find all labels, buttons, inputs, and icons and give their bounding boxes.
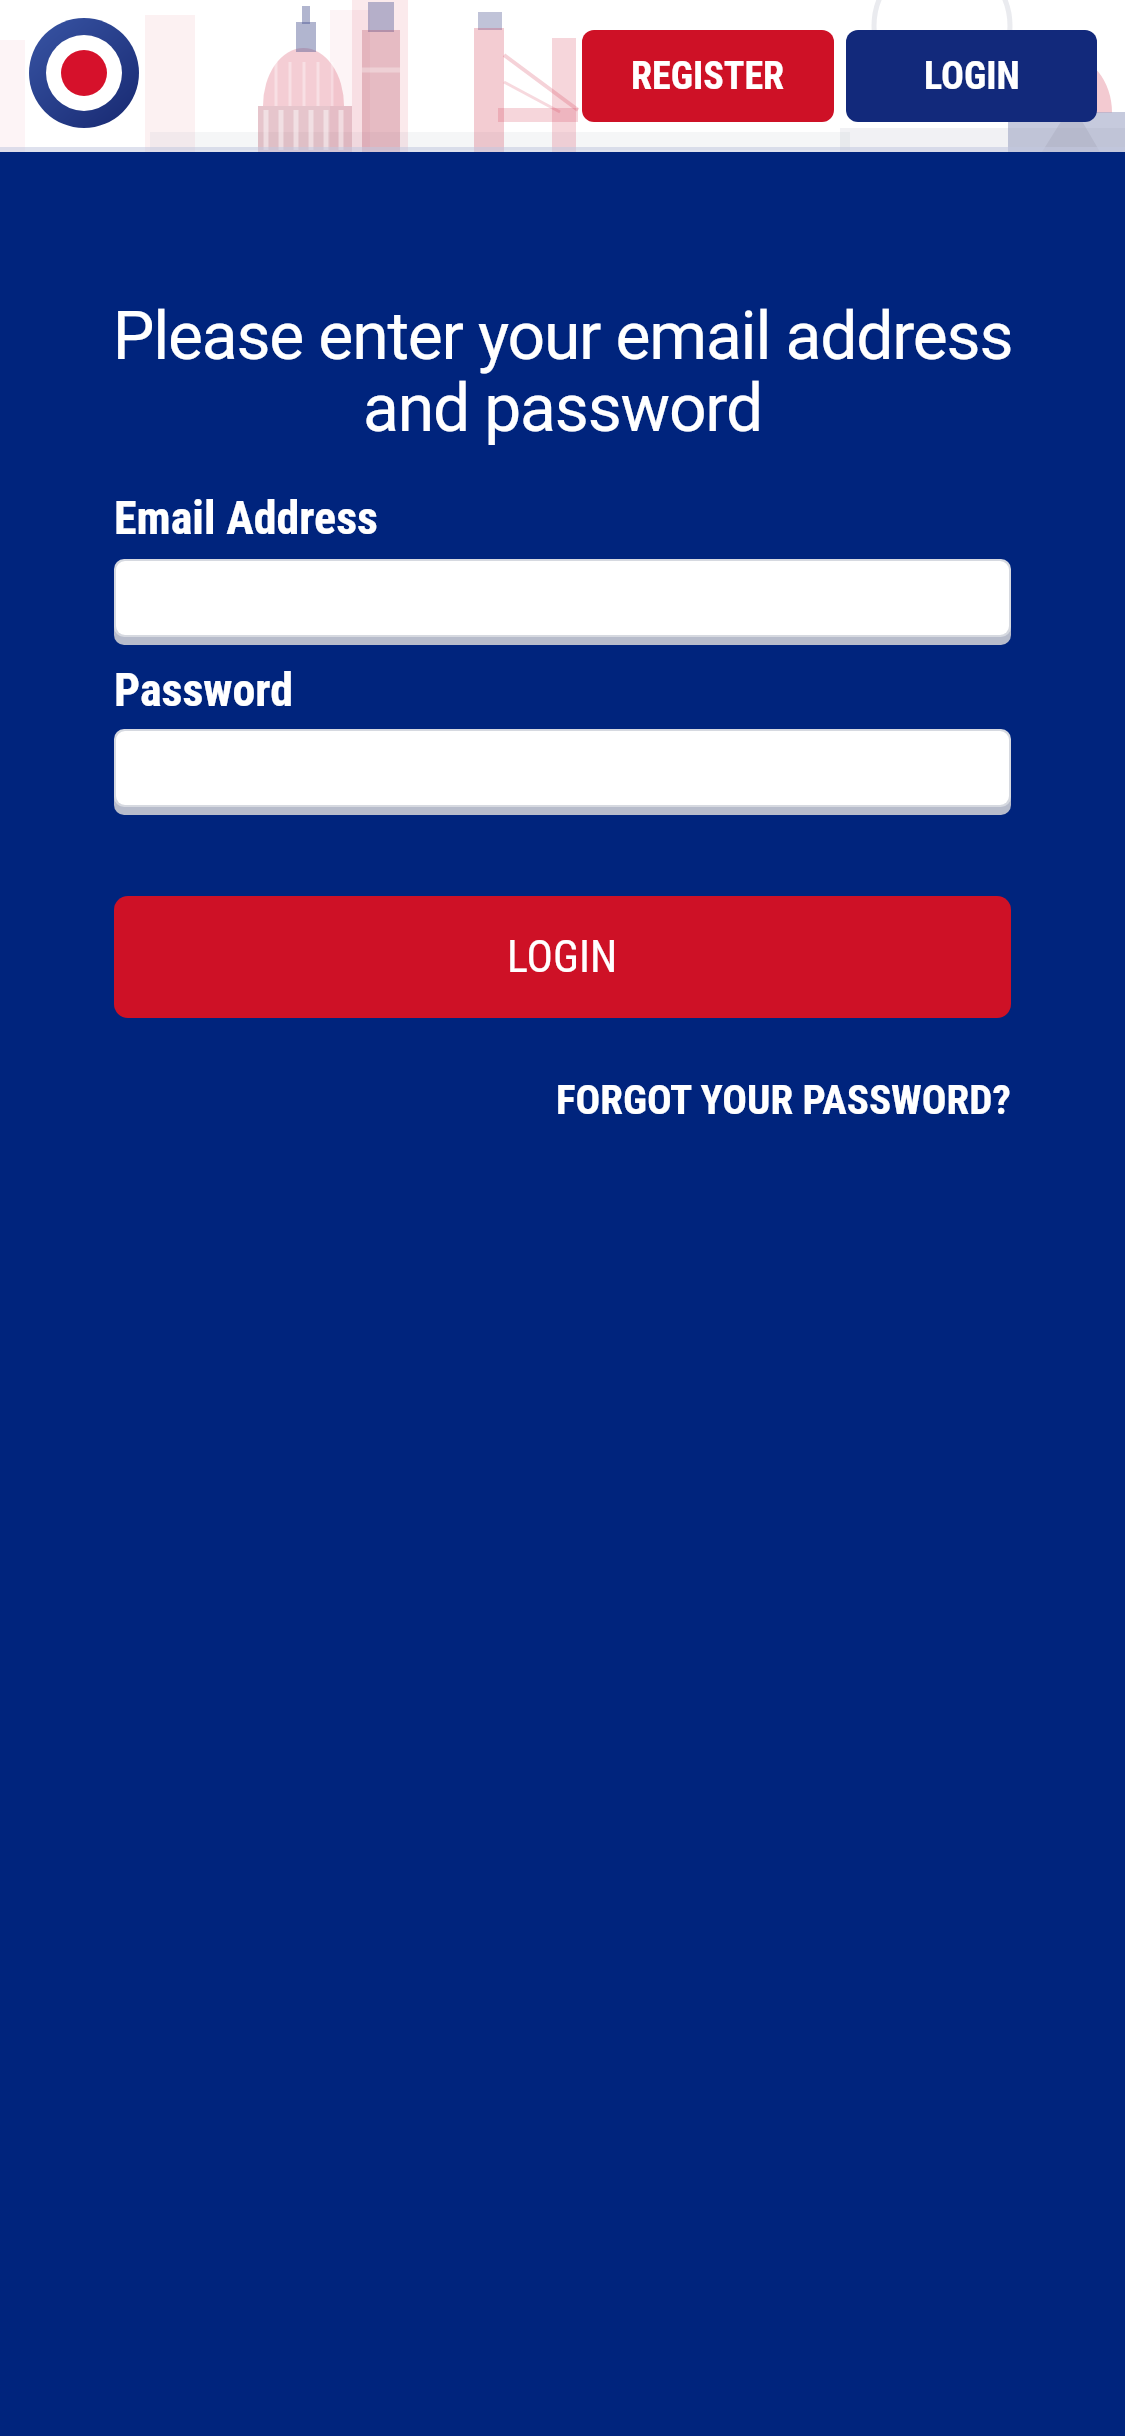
button[interactable]: LOGIN: [846, 30, 1097, 122]
staticText: Please enter your email address and pass…: [0, 298, 1125, 447]
staticText: Email Address: [114, 491, 378, 545]
staticText: LOGIN: [924, 54, 1020, 99]
button[interactable]: LOGIN: [114, 896, 1011, 1018]
button[interactable]: REGISTER: [582, 30, 834, 122]
button[interactable]: FORGOT YOUR PASSWORD?: [556, 1076, 1011, 1124]
staticText: Password: [114, 663, 293, 717]
staticText: REGISTER: [631, 54, 785, 99]
staticText: FORGOT YOUR PASSWORD?: [556, 1076, 1011, 1124]
staticText: LOGIN: [507, 931, 618, 983]
